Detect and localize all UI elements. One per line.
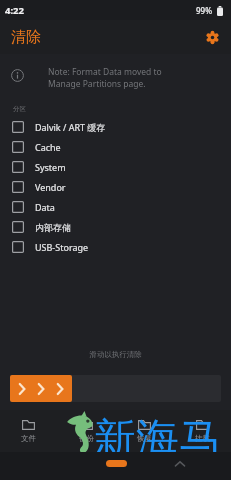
staticText: Data	[35, 201, 55, 213]
staticText: 备份	[79, 434, 94, 443]
button[interactable]: 备份	[57, 410, 115, 452]
staticText: 99%	[196, 5, 212, 16]
button[interactable]: Home	[106, 460, 127, 467]
button[interactable]: 挂载	[173, 410, 231, 452]
staticText: Vendor	[35, 181, 66, 193]
button[interactable]: System	[0, 157, 231, 177]
staticText: Cache	[35, 141, 61, 153]
staticText: System	[35, 161, 66, 173]
staticText: 文件	[21, 434, 36, 443]
button[interactable]: Vendor	[0, 177, 231, 197]
staticText: 挂载	[195, 434, 210, 443]
button[interactable]: Slide to wipe	[10, 375, 72, 402]
button[interactable]: Back	[174, 458, 186, 470]
staticText: 分区	[13, 105, 26, 113]
button[interactable]: Settings	[200, 25, 224, 49]
button[interactable]: USB-Storage	[0, 237, 231, 257]
staticText: 清除	[11, 28, 41, 47]
staticText: Note: Format Data moved to Manage Partit…	[48, 66, 162, 90]
button[interactable]: Cache	[0, 137, 231, 157]
staticText: USB-Storage	[35, 241, 89, 253]
button[interactable]: 恢复	[115, 410, 173, 452]
button[interactable]: 文件	[0, 410, 57, 452]
button[interactable]: Dalvik / ART 缓存	[0, 117, 231, 137]
button[interactable]: 内部存储	[0, 217, 231, 237]
button[interactable]: Data	[0, 197, 231, 217]
staticText: 新海马	[93, 413, 222, 467]
staticText: 内部存储	[35, 222, 71, 233]
staticText: Dalvik / ART 缓存	[35, 121, 106, 133]
staticText: 滑动以执行清除	[0, 350, 231, 359]
staticText: 4:22	[5, 4, 24, 17]
staticText: 恢复	[137, 434, 152, 443]
